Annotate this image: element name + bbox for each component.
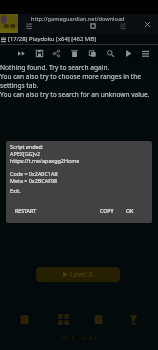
staticText: http://gameguardian.net/download — [31, 15, 125, 23]
staticText: Level 3 — [70, 270, 93, 279]
button[interactable]: Save — [31, 45, 48, 62]
staticText: https://t.me/apexgg2Home — [10, 157, 80, 164]
staticText: Exit. — [10, 187, 21, 194]
staticText: You can also try to choose more ranges i… — [0, 72, 142, 81]
staticText: Code = 0x2A0C1A8 — [10, 170, 58, 177]
button[interactable]: Tune — [24, 21, 34, 31]
button[interactable]: Play — [120, 45, 137, 62]
staticText: APEX[GG]v2 — [10, 150, 41, 157]
staticText: OK — [126, 207, 134, 214]
button[interactable]: RESTART — [14, 205, 38, 216]
button[interactable]: Search — [102, 45, 119, 62]
staticText: Meta = 0x2BCAF98 — [10, 177, 58, 184]
button[interactable]: Trophy — [127, 313, 140, 326]
button[interactable]: OK — [125, 205, 135, 216]
button[interactable]: Menu — [137, 45, 154, 62]
button[interactable]: Daily — [18, 313, 31, 326]
staticText: [17/28] Playdoku [x64] [462 MB] — [8, 35, 96, 43]
button[interactable]: Delete — [66, 45, 83, 62]
button[interactable]: Share — [48, 45, 65, 62]
staticText: settings tab. — [0, 81, 39, 90]
button[interactable]: Screenshot — [88, 21, 98, 31]
button[interactable]: Levels — [57, 313, 70, 326]
button[interactable]: Fast forward — [13, 45, 30, 62]
staticText: COPY — [100, 207, 114, 214]
staticText: You can also try to search for an unknow… — [0, 90, 150, 99]
staticText: Nothing found. Try to search again. — [0, 63, 110, 72]
button[interactable]: Level 3 — [36, 267, 120, 282]
staticText: 101.1 Ca.A 0 — [61, 335, 97, 342]
button[interactable]: Copy — [84, 45, 101, 62]
button[interactable]: Shop — [92, 313, 105, 326]
staticText: Script ended: — [10, 143, 44, 150]
button[interactable]: COPY — [99, 205, 115, 216]
button[interactable]: Options — [118, 21, 128, 31]
staticText: RESTART — [15, 207, 37, 214]
button[interactable]: Close — [142, 19, 153, 30]
